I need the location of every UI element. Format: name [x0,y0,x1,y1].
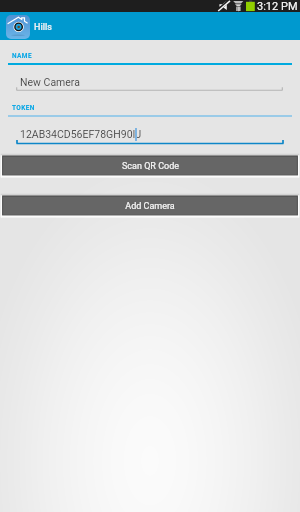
staticText: Hills [34,22,52,33]
button[interactable]: New Camera [0,70,300,92]
staticText: Add Camera [125,201,175,212]
staticText: Scan QR Code [122,161,179,172]
staticText: New Camera [20,76,80,88]
staticText: 3:12 PM [257,0,298,12]
other: App icon [6,15,30,39]
button[interactable]: Scan QR Code [0,154,300,178]
staticText: 12AB34CD56EF78GH90IJ [20,128,142,140]
button[interactable]: Add Camera [0,194,300,218]
button[interactable]: 12AB34CD56EF78GH90IJ [0,122,300,144]
staticText: NAME [12,52,32,60]
staticText: TOKEN [12,104,35,112]
button[interactable]: App icon [0,12,300,40]
